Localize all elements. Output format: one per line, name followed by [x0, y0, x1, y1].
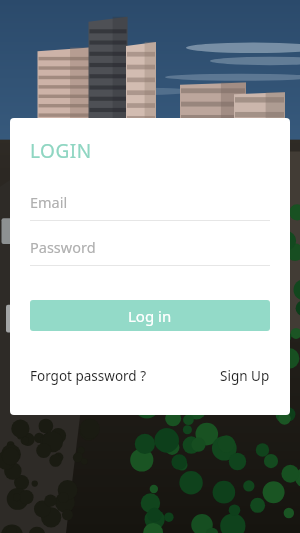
button[interactable]: Sign Up	[220, 367, 270, 385]
staticText: LOGIN	[30, 138, 92, 164]
button[interactable]: Forgot password ?	[30, 367, 147, 385]
staticText: Email	[30, 192, 68, 212]
button[interactable]: Password	[30, 237, 270, 266]
staticText: Sign Up	[220, 367, 270, 385]
button[interactable]: Email	[30, 192, 270, 221]
staticText: Forgot password ?	[30, 367, 147, 385]
staticText: Log in	[128, 306, 172, 326]
staticText: Password	[30, 237, 96, 257]
button[interactable]: Log in	[30, 300, 270, 331]
